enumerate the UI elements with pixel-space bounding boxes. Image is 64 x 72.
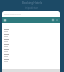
button[interactable] bbox=[4, 39, 60, 44]
staticText: www.hotels.com bbox=[4, 13, 21, 16]
button[interactable] bbox=[4, 44, 60, 49]
button[interactable] bbox=[4, 59, 60, 64]
button[interactable] bbox=[4, 29, 60, 34]
staticText: Booking Hotels bbox=[22, 1, 43, 5]
button[interactable]: Menu bbox=[3, 18, 7, 22]
button[interactable] bbox=[4, 34, 60, 39]
button[interactable]: Search bbox=[51, 18, 55, 22]
button[interactable]: More options bbox=[55, 18, 59, 22]
button[interactable] bbox=[4, 49, 60, 54]
staticText: tripadvisor bbox=[25, 6, 39, 10]
button[interactable] bbox=[4, 54, 60, 59]
